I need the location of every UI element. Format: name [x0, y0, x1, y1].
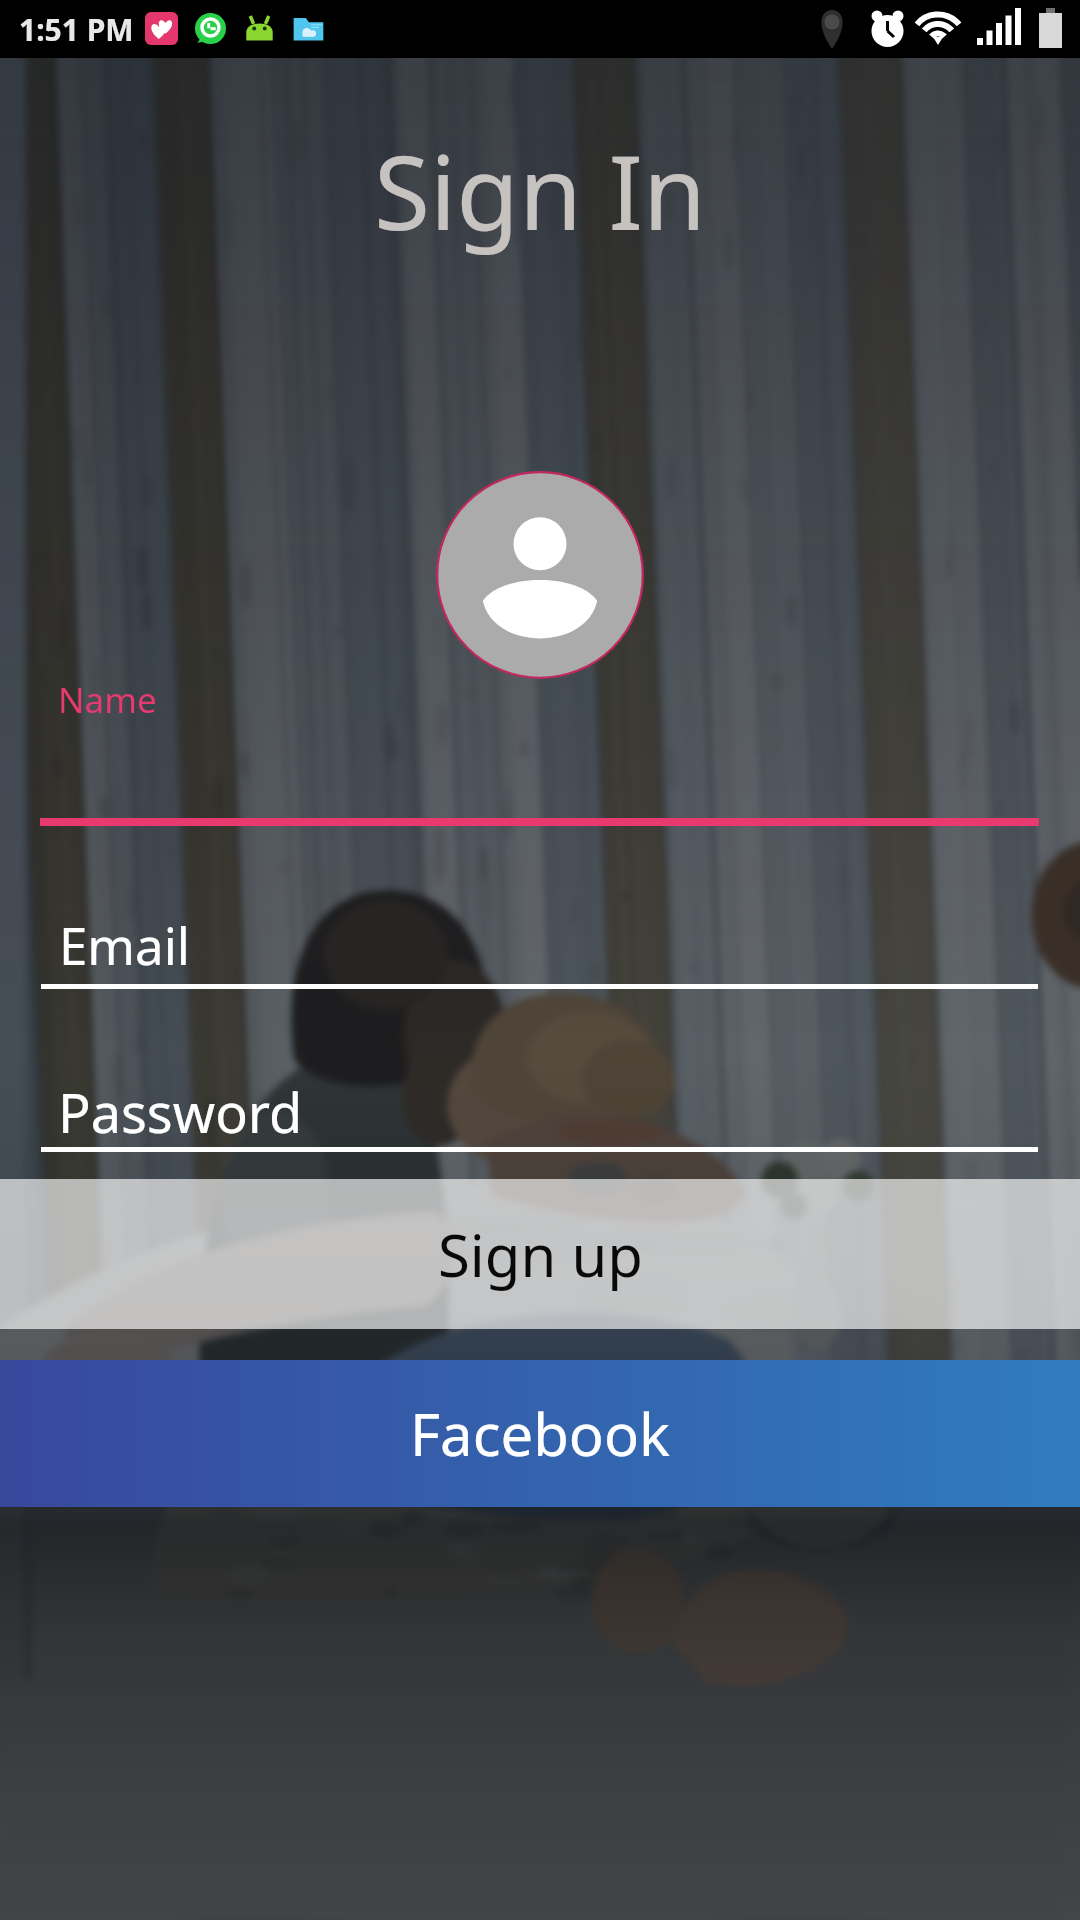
- staticText: Sign up: [438, 1215, 643, 1294]
- button[interactable]: Profile photo: [436, 471, 644, 679]
- staticText: Email: [59, 910, 190, 979]
- button[interactable]: Name: [0, 655, 1080, 827]
- staticText: Facebook: [410, 1394, 671, 1473]
- button[interactable]: Sign up: [0, 1179, 1080, 1329]
- staticText: Password: [58, 1075, 303, 1149]
- button[interactable]: Email: [0, 900, 1080, 990]
- button[interactable]: Password: [0, 1066, 1080, 1156]
- staticText: Name: [58, 676, 157, 724]
- staticText: Sign In: [0, 121, 1080, 260]
- button[interactable]: Facebook: [0, 1360, 1080, 1507]
- staticText: 1:51 PM: [19, 9, 134, 50]
